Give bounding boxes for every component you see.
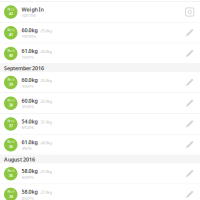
staticText: Week [7,8,14,11]
staticText: 41 [9,32,13,37]
staticText: -25.0kg [39,28,51,33]
staticText: 36 [9,144,13,149]
staticText: 61.0kg [21,138,37,146]
staticText: 35 [9,173,13,178]
staticText: 39 [9,82,13,87]
staticText: 9/12/16 [21,125,33,130]
staticText: 58.0kg [21,167,37,175]
staticText: -25.0kg [39,98,51,104]
staticText: -27.0kg [39,169,51,174]
staticText: Week [7,119,14,123]
staticText: -24.0kg [39,140,51,145]
staticText: September 2016 [4,65,44,72]
button[interactable]: Week [0,23,200,43]
staticText: 8/22/16 [21,195,33,200]
button[interactable]: Week [0,93,200,114]
staticText: Week [7,140,14,144]
button[interactable]: Week [0,184,200,200]
staticText: Week [7,78,14,81]
staticText: August 2016 [4,156,35,163]
staticText: 37 [9,123,13,128]
button[interactable]: Week [0,114,200,135]
staticText: 60.0kg [21,76,37,83]
staticText: -25.0kg [39,78,51,83]
staticText: -31.0kg [39,119,51,124]
staticText: 8/29/16 [21,175,33,180]
staticText: 60.0kg [21,27,37,34]
staticText: Weigh In [21,6,43,13]
staticText: Week [7,28,14,32]
button[interactable]: Week [0,2,200,23]
staticText: 34 [9,193,13,199]
staticText: 38 [9,102,13,108]
staticText: 42 [9,11,13,16]
staticText: 10/3/16 [21,54,33,60]
staticText: 10/10/16 [21,34,35,39]
staticText: 61.0kg [21,47,37,54]
staticText: Week [7,99,14,102]
staticText: 54.0kg [21,118,37,125]
staticText: -27.0kg [39,190,51,195]
staticText: 10/17/16 [21,13,35,18]
staticText: 40 [9,53,13,58]
staticText: 9/26/16 [21,83,33,89]
staticText: Week [7,49,14,53]
staticText: 60.0kg [21,97,37,104]
button[interactable]: Week [0,72,200,93]
staticText: 9/5/16 [21,146,31,151]
button[interactable]: Week [0,163,200,184]
staticText: Week [7,190,14,193]
button[interactable]: Week [0,43,200,64]
button[interactable]: Week [0,135,200,155]
staticText: 9/19/16 [21,104,33,109]
staticText: -24.0kg [39,49,51,54]
staticText: Week [7,169,14,173]
staticText: 58.0kg [21,188,37,195]
